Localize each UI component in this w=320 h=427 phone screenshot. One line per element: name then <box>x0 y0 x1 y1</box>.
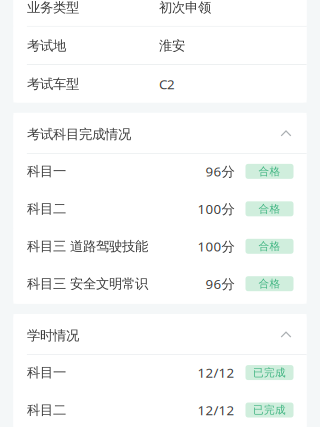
staticText: 已完成 <box>253 366 286 379</box>
staticText: 科目一 <box>27 364 66 381</box>
staticText: 科目三 道路驾驶技能 <box>27 238 148 254</box>
staticText: 合格 <box>258 277 280 290</box>
button[interactable]: 学时情况 <box>13 314 306 354</box>
staticText: C2 <box>159 75 175 93</box>
staticText: 96分 <box>205 162 234 180</box>
staticText: 业务类型 <box>27 0 79 16</box>
staticText: 12/12 <box>197 401 234 419</box>
staticText: 12/12 <box>197 364 234 381</box>
staticText: 合格 <box>258 202 280 215</box>
staticText: 科目二 <box>27 402 66 418</box>
staticText: 淮安 <box>159 38 185 54</box>
staticText: 科目二 <box>27 201 66 217</box>
staticText: 已完成 <box>253 403 286 417</box>
staticText: 考试地 <box>27 38 66 54</box>
staticText: 学时情况 <box>27 327 79 344</box>
staticText: 合格 <box>258 240 280 253</box>
staticText: 96分 <box>205 275 234 293</box>
staticText: 合格 <box>258 165 280 178</box>
staticText: 科目三 安全文明常识 <box>27 275 148 292</box>
staticText: 科目一 <box>27 163 66 180</box>
staticText: 100分 <box>197 237 234 255</box>
staticText: 初次申领 <box>159 0 211 16</box>
staticText: 考试科目完成情况 <box>27 126 131 142</box>
button[interactable]: 考试科目完成情况 <box>13 113 306 153</box>
staticText: 考试车型 <box>27 76 79 92</box>
staticText: 100分 <box>197 200 234 218</box>
